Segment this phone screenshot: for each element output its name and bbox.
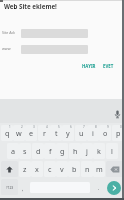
staticText: n — [85, 164, 90, 174]
button[interactable]: m — [93, 161, 105, 177]
staticText: www — [2, 46, 11, 51]
button[interactable] — [111, 104, 124, 122]
staticText: z — [23, 164, 27, 174]
staticText: h — [73, 146, 78, 156]
staticText: s — [23, 146, 27, 156]
staticText: 8 — [95, 125, 97, 129]
button[interactable] — [107, 181, 121, 195]
button[interactable]: n — [81, 161, 93, 177]
staticText: 2 — [21, 125, 23, 129]
staticText: 0 — [120, 125, 122, 129]
staticText: b — [72, 164, 77, 174]
staticText: p — [116, 128, 121, 138]
staticText: 6 — [70, 125, 72, 129]
button[interactable] — [1, 161, 18, 177]
staticText: 9 — [107, 125, 109, 129]
staticText: q — [5, 128, 10, 138]
button[interactable]: v — [56, 161, 68, 177]
button[interactable]: t — [50, 125, 62, 141]
staticText: a — [11, 146, 16, 156]
button[interactable]: , — [22, 185, 24, 192]
button[interactable]: y — [62, 125, 74, 141]
staticText: 5 — [58, 125, 60, 129]
staticText: m — [96, 164, 103, 174]
button[interactable]: c — [44, 161, 56, 177]
button[interactable]: i — [87, 125, 99, 141]
staticText: d — [36, 146, 41, 156]
staticText: i — [92, 128, 94, 138]
staticText: Web Site ekleme! — [4, 2, 57, 10]
staticText: t — [55, 128, 58, 138]
button[interactable]: u — [75, 125, 87, 141]
button[interactable]: w — [13, 125, 25, 141]
button[interactable]: f — [44, 143, 56, 159]
staticText: 4 — [46, 125, 48, 129]
button[interactable]: . — [98, 184, 100, 191]
staticText: u — [79, 128, 84, 138]
staticText: j — [86, 146, 88, 156]
button[interactable]: k — [93, 143, 105, 159]
staticText: ?123 — [6, 185, 14, 190]
staticText: y — [66, 128, 70, 138]
button[interactable] — [106, 161, 123, 177]
staticText: e — [29, 128, 34, 138]
button[interactable]: e — [25, 125, 37, 141]
staticText: l — [111, 146, 113, 156]
button[interactable]: h — [69, 143, 81, 159]
button[interactable]: EVET — [103, 63, 114, 69]
button[interactable]: g — [56, 143, 68, 159]
button[interactable]: a — [7, 143, 19, 159]
button[interactable]: d — [32, 143, 44, 159]
button[interactable]: b — [68, 161, 80, 177]
button[interactable]: j — [81, 143, 93, 159]
staticText: w — [16, 128, 22, 138]
button[interactable]: s — [19, 143, 31, 159]
staticText: f — [49, 146, 52, 156]
button[interactable]: p — [112, 125, 124, 141]
staticText: 1 — [9, 125, 11, 129]
staticText: r — [43, 128, 46, 138]
button[interactable]: o — [99, 125, 111, 141]
button[interactable]: x — [31, 161, 43, 177]
staticText: g — [60, 146, 65, 156]
button[interactable]: l — [106, 143, 118, 159]
staticText: x — [35, 164, 39, 174]
button[interactable]: z — [19, 161, 31, 177]
staticText: 3 — [33, 125, 35, 129]
staticText: 7 — [83, 125, 85, 129]
staticText: o — [103, 128, 108, 138]
button[interactable]: HAYIR — [82, 63, 96, 69]
button[interactable]: ?123 — [1, 179, 18, 195]
button[interactable]: r — [38, 125, 50, 141]
button[interactable]: q — [1, 125, 13, 141]
staticText: v — [60, 164, 64, 174]
staticText: k — [97, 146, 101, 156]
staticText: c — [48, 164, 52, 174]
staticText: Site Adı — [2, 30, 15, 35]
